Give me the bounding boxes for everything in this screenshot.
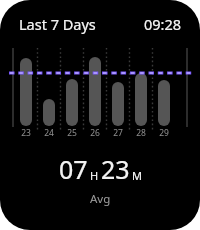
button[interactable]: 07 — [0, 152, 200, 207]
staticText: 23 — [101, 152, 130, 186]
staticText: 25 — [64, 127, 80, 139]
staticText: 23 — [18, 127, 34, 139]
staticText: M — [132, 168, 142, 183]
staticText: Last 7 Days — [19, 14, 96, 34]
staticText: 26 — [87, 127, 103, 139]
staticText: 28 — [133, 127, 149, 139]
staticText: 24 — [41, 127, 57, 139]
staticText: H — [90, 168, 99, 183]
staticText: Avg — [90, 191, 111, 207]
staticText: 29 — [156, 127, 172, 139]
button[interactable]: Last 7 Days — [19, 14, 96, 34]
staticText: 27 — [110, 127, 126, 139]
staticText: 09:28 — [144, 14, 182, 34]
button[interactable]: Weekly sleep chart — [0, 44, 200, 128]
staticText: 07 — [59, 152, 88, 186]
button[interactable]: 09:28 — [144, 14, 182, 34]
